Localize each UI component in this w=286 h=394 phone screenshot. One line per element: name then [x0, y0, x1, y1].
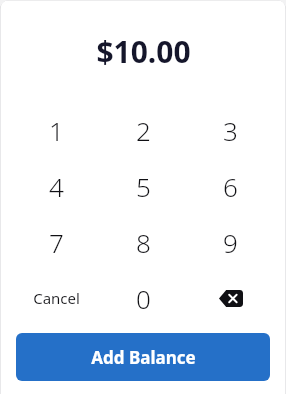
button[interactable]: Cancel	[12, 270, 100, 326]
button[interactable]: Backspace	[187, 270, 274, 326]
button[interactable]: 0	[100, 270, 187, 326]
button[interactable]: 7	[12, 214, 100, 270]
staticText: 1	[49, 113, 64, 148]
staticText: 5	[136, 169, 151, 204]
button[interactable]: 2	[100, 102, 187, 158]
staticText: 4	[49, 169, 64, 204]
staticText: 9	[223, 225, 238, 260]
button[interactable]: 9	[187, 214, 274, 270]
button[interactable]: Add Balance	[16, 333, 270, 381]
button[interactable]: 1	[12, 102, 100, 158]
staticText: 8	[136, 225, 151, 260]
staticText: Cancel	[33, 288, 80, 308]
staticText: 2	[136, 113, 151, 148]
button[interactable]: 4	[12, 158, 100, 214]
staticText: 7	[49, 225, 64, 260]
button[interactable]: 5	[100, 158, 187, 214]
staticText: Add Balance	[91, 346, 196, 369]
staticText: 3	[223, 113, 238, 148]
staticText: $10.00	[96, 31, 191, 72]
button[interactable]: 6	[187, 158, 274, 214]
button[interactable]: 8	[100, 214, 187, 270]
staticText: 6	[223, 169, 238, 204]
staticText: 0	[136, 281, 151, 316]
button[interactable]: 3	[187, 102, 274, 158]
